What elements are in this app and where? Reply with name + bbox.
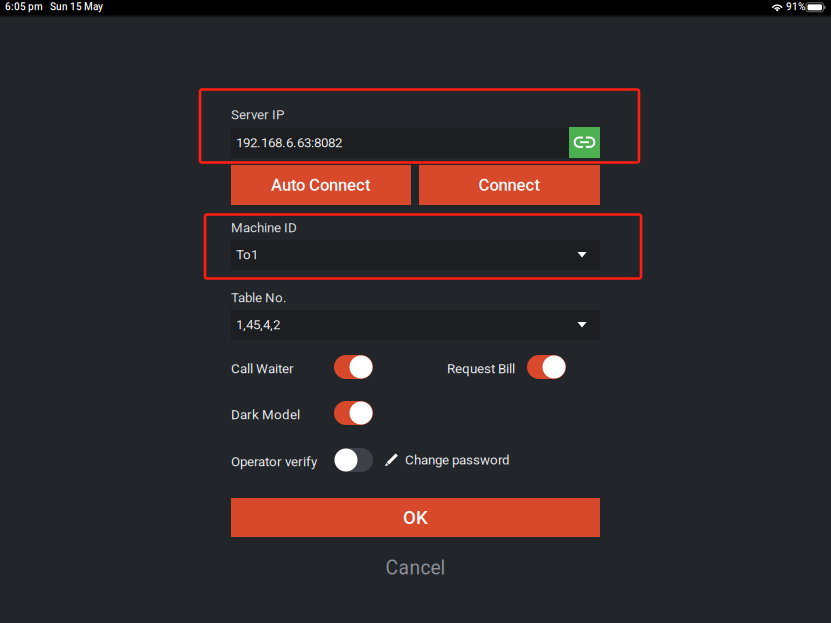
staticText: 1,45,4,2: [236, 317, 280, 333]
staticText: 192.168.6.63:8082: [236, 135, 342, 151]
button[interactable]: Call Waiter: [334, 355, 373, 379]
button[interactable]: Auto Connect: [231, 165, 411, 205]
staticText: OK: [403, 507, 428, 528]
button[interactable]: OK: [231, 498, 600, 537]
staticText: Operator verify: [231, 454, 317, 470]
button[interactable]: Dark Model: [334, 401, 373, 425]
button[interactable]: Test connection: [569, 127, 600, 158]
button[interactable]: Table No.: [231, 310, 600, 340]
staticText: Cancel: [385, 557, 445, 579]
staticText: Machine ID: [231, 220, 297, 236]
staticText: Server IP: [231, 107, 284, 123]
button[interactable]: Operator verify: [334, 448, 373, 472]
button[interactable]: Change password: [385, 448, 510, 472]
staticText: To1: [236, 247, 258, 263]
staticText: Request Bill: [447, 361, 515, 377]
staticText: Call Waiter: [231, 361, 294, 377]
staticText: Table No.: [231, 290, 287, 306]
button[interactable]: Request Bill: [527, 355, 566, 379]
button[interactable]: Connect: [419, 165, 600, 205]
staticText: Auto Connect: [271, 175, 371, 195]
staticText: 91%: [786, 1, 805, 13]
staticText: Change password: [405, 452, 510, 468]
button[interactable]: Cancel: [231, 552, 600, 584]
staticText: Sun 15 May: [50, 1, 103, 13]
button[interactable]: Machine ID: [231, 240, 600, 270]
staticText: Connect: [478, 175, 540, 195]
staticText: 6:05 pm: [5, 1, 43, 13]
staticText: Dark Model: [231, 407, 300, 423]
